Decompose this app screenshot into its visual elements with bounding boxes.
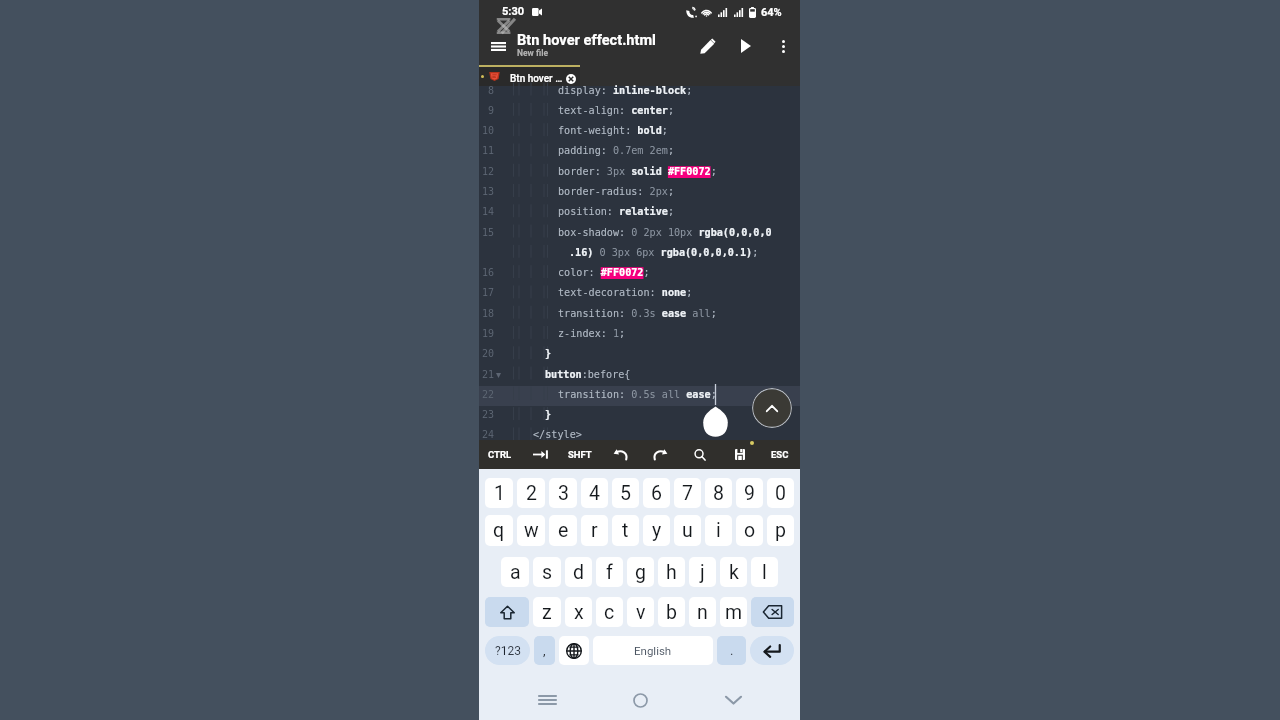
staticText: 15 [479, 227, 494, 239]
button[interactable]: e [549, 515, 577, 546]
button[interactable] [680, 440, 720, 469]
button[interactable]: 7 [674, 478, 701, 508]
button[interactable]: Close tab [565, 73, 576, 84]
staticText: 10 [479, 125, 494, 137]
button[interactable]: h [658, 557, 685, 587]
button[interactable]: 9 [736, 478, 763, 508]
button[interactable]: CTRL [479, 440, 520, 469]
staticText: ?123 [495, 644, 521, 658]
button[interactable]: Enter [750, 636, 794, 665]
button[interactable]: o [736, 515, 763, 546]
button[interactable]: g [627, 557, 654, 587]
staticText: 3 [558, 482, 569, 505]
staticText: SHFT [568, 449, 592, 460]
staticText: border-radius: 2px; [558, 186, 674, 198]
button[interactable]: j [689, 557, 716, 587]
staticText: box-shadow: 0 2px 10px rgba(0,0,0,0 [558, 227, 772, 239]
staticText: j [700, 561, 705, 584]
staticText: </style> [533, 429, 582, 441]
button[interactable]: 0 [767, 478, 794, 508]
staticText: 8 [713, 482, 724, 505]
button[interactable]: . [717, 636, 746, 665]
button[interactable]: k [720, 557, 747, 587]
staticText: t [622, 519, 629, 542]
button[interactable]: y [643, 515, 670, 546]
button[interactable]: , [534, 636, 555, 665]
staticText: 16 [479, 267, 494, 279]
button[interactable]: d [565, 557, 592, 587]
button[interactable]: m [720, 597, 747, 627]
button[interactable]: English [593, 636, 713, 665]
button[interactable]: t [612, 515, 639, 546]
button[interactable]: i [705, 515, 732, 546]
staticText: 21 [479, 369, 494, 381]
button[interactable]: ?123 [485, 636, 530, 665]
button[interactable]: 6 [643, 478, 670, 508]
staticText: transition: 0.3s ease all; [558, 308, 717, 320]
button[interactable]: SHFT [560, 440, 600, 469]
button[interactable]: 4 [581, 478, 608, 508]
staticText: u [682, 519, 693, 542]
staticText: z-index: 1; [558, 328, 626, 340]
staticText: position: relative; [558, 206, 674, 218]
staticText: } [545, 348, 552, 360]
button[interactable]: Shift [485, 597, 529, 627]
button[interactable]: Hide keyboard [711, 678, 755, 720]
button[interactable]: ESC [760, 440, 800, 469]
button[interactable]: Scroll to top [752, 388, 792, 428]
button[interactable]: u [674, 515, 701, 546]
button[interactable]: Run [730, 30, 762, 62]
button[interactable]: Backspace [751, 597, 794, 627]
button[interactable]: 8 [705, 478, 732, 508]
staticText: r [591, 519, 598, 542]
staticText: 6 [651, 482, 662, 505]
button[interactable]: r [581, 515, 608, 546]
button[interactable]: l [751, 557, 778, 587]
button[interactable]: p [767, 515, 794, 546]
button[interactable] [600, 440, 640, 469]
button[interactable]: v [627, 597, 654, 627]
button[interactable]: Edit [691, 30, 723, 62]
button[interactable]: Recent apps [525, 678, 569, 720]
staticText: p [775, 519, 786, 542]
button[interactable]: Navigation menu [483, 31, 513, 61]
staticText: 2 [526, 482, 537, 505]
button[interactable]: 3 [549, 478, 577, 508]
staticText: 23 [479, 409, 494, 421]
staticText: 1 [494, 482, 505, 505]
staticText: color: #FF0072; [558, 267, 650, 279]
staticText: i [716, 519, 721, 542]
staticText: d [573, 561, 584, 584]
staticText: ESC [771, 449, 789, 460]
staticText: k [729, 561, 739, 584]
button[interactable]: f [596, 557, 623, 587]
staticText: s [542, 561, 553, 584]
staticText: e [558, 519, 569, 542]
button[interactable]: 5 [612, 478, 639, 508]
button[interactable]: Btn hover … [479, 67, 580, 88]
button[interactable]: q [485, 515, 513, 546]
button[interactable]: Home [618, 678, 662, 720]
button[interactable]: a [501, 557, 529, 587]
button[interactable]: n [689, 597, 716, 627]
button[interactable]: w [517, 515, 545, 546]
button[interactable] [640, 440, 680, 469]
staticText: y [652, 519, 662, 542]
button[interactable]: z [533, 597, 561, 627]
button[interactable]: b [658, 597, 685, 627]
staticText: 4 [589, 482, 600, 505]
button[interactable]: Change language [559, 636, 589, 665]
staticText: a [510, 561, 521, 584]
staticText: f [606, 561, 613, 584]
button[interactable] [520, 440, 560, 469]
button[interactable]: s [533, 557, 561, 587]
button[interactable]: More options [767, 30, 799, 62]
button[interactable]: 2 [517, 478, 545, 508]
staticText: 9 [744, 482, 755, 505]
button[interactable]: c [596, 597, 623, 627]
staticText: New file [517, 48, 548, 58]
button[interactable]: 1 [485, 478, 513, 508]
button[interactable] [720, 440, 760, 469]
staticText: 12 [479, 166, 494, 178]
button[interactable]: x [565, 597, 592, 627]
